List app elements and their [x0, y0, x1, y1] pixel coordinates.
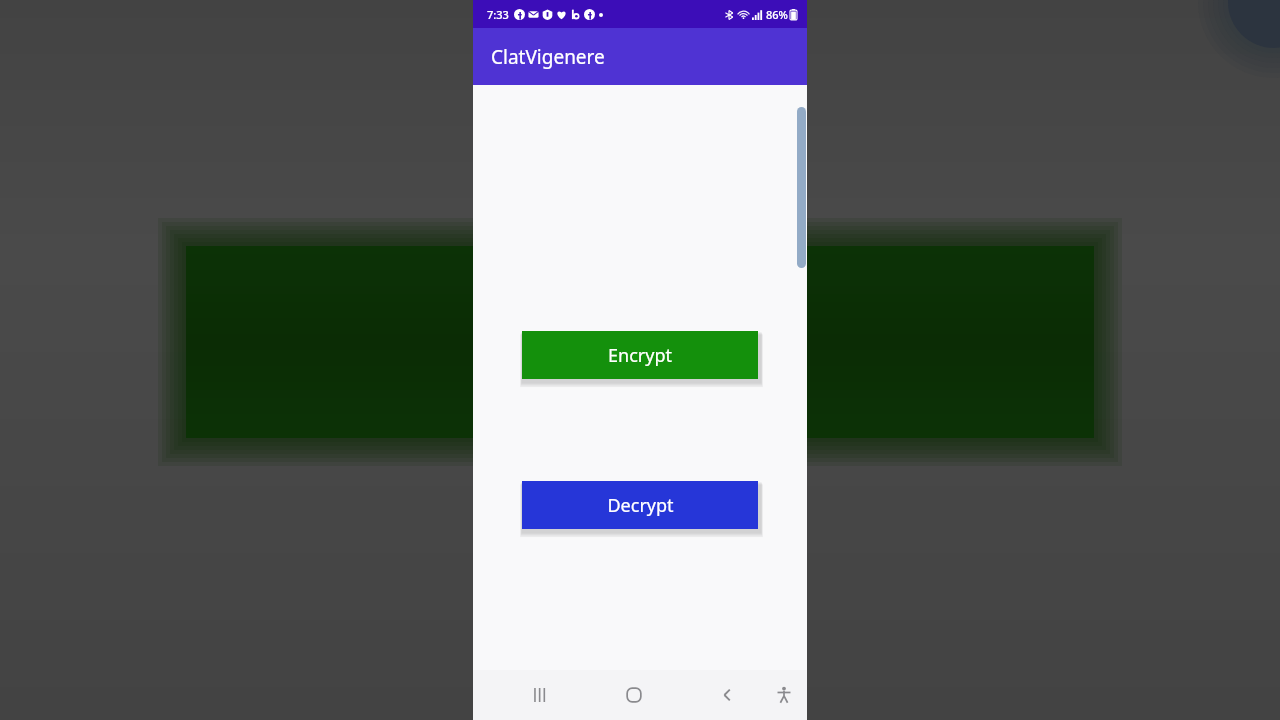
button[interactable]: Recent apps: [517, 672, 563, 718]
staticText: Encrypt: [608, 343, 672, 368]
button[interactable]: Back: [705, 672, 751, 718]
button[interactable]: Encrypt: [522, 331, 758, 379]
staticText: 86%: [766, 7, 788, 22]
button[interactable]: Home: [611, 672, 657, 718]
staticText: ClatVigenere: [491, 44, 605, 70]
staticText: 7:33: [487, 7, 509, 22]
button[interactable]: Decrypt: [522, 481, 758, 529]
staticText: Decrypt: [607, 493, 674, 518]
button[interactable]: Accessibility: [761, 672, 807, 718]
